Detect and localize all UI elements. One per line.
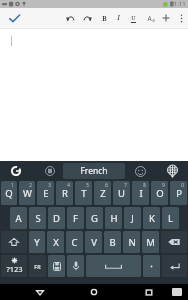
button[interactable]: S <box>29 207 46 229</box>
button[interactable]: Language <box>29 255 46 277</box>
staticText: T <box>81 187 87 200</box>
staticText: 2 <box>29 182 32 188</box>
staticText: 8 <box>143 182 146 188</box>
button[interactable]: Backspace <box>161 231 187 253</box>
button[interactable]: Recent apps <box>134 284 164 300</box>
button[interactable]: A <box>10 207 27 229</box>
button[interactable]: Stickers <box>48 255 65 277</box>
button[interactable]: Home <box>79 284 109 300</box>
button[interactable]: Back <box>25 284 55 300</box>
button[interactable]: P <box>170 181 187 205</box>
staticText: A <box>147 14 152 23</box>
button[interactable]: Y <box>29 231 45 253</box>
staticText: U <box>118 187 125 200</box>
staticText: ?123 <box>6 264 23 274</box>
staticText: Q <box>5 187 13 200</box>
staticText: E <box>43 187 49 200</box>
staticText: H <box>110 212 118 225</box>
button[interactable]: Shift <box>1 231 27 253</box>
button[interactable]: J <box>124 207 141 229</box>
button[interactable]: Undo <box>62 8 78 28</box>
button[interactable]: V <box>85 231 102 253</box>
staticText: 5 <box>86 182 89 188</box>
button[interactable]: L <box>162 207 179 229</box>
staticText: R <box>62 187 68 200</box>
button[interactable]: D <box>48 207 65 229</box>
button[interactable]: Underline <box>125 8 141 28</box>
staticText: W <box>23 187 32 200</box>
button[interactable]: N <box>123 231 140 253</box>
staticText: O <box>156 187 164 200</box>
staticText: a <box>152 17 155 23</box>
button[interactable]: Q <box>1 181 17 205</box>
button[interactable]: Text format <box>143 8 159 28</box>
staticText: 1 <box>11 182 14 188</box>
staticText: French <box>80 165 108 177</box>
button[interactable]: Period <box>143 255 160 277</box>
button[interactable]: R <box>56 181 73 205</box>
staticText: J <box>131 212 134 225</box>
button[interactable]: Done <box>5 8 23 28</box>
button[interactable]: I <box>132 181 149 205</box>
staticText: 9 <box>162 182 165 188</box>
button[interactable]: G <box>86 207 103 229</box>
button[interactable]: Space <box>86 255 141 277</box>
staticText: X <box>53 236 59 249</box>
staticText: 3 <box>48 182 51 188</box>
button[interactable]: C <box>66 231 83 253</box>
button[interactable]: F <box>67 207 84 229</box>
staticText: 7 <box>124 182 127 188</box>
staticText: G <box>91 212 98 225</box>
staticText: B <box>109 236 116 249</box>
button[interactable]: H <box>105 207 122 229</box>
button[interactable]: Clipboard <box>43 164 56 177</box>
staticText: A <box>15 212 22 225</box>
button[interactable]: O <box>151 181 168 205</box>
button[interactable]: More options <box>174 8 188 28</box>
staticText: I <box>117 13 120 23</box>
button[interactable]: K <box>143 207 160 229</box>
button[interactable]: Emoji <box>133 164 147 178</box>
button[interactable]: W <box>19 181 35 205</box>
button[interactable]: T <box>75 181 92 205</box>
staticText: M <box>146 236 155 249</box>
staticText: L <box>168 212 173 225</box>
staticText: D <box>53 212 60 225</box>
button[interactable]: Hide keyboard <box>172 288 182 296</box>
staticText: S <box>35 212 41 225</box>
staticText: F <box>73 212 78 225</box>
staticText: K <box>149 212 155 225</box>
staticText: U <box>131 14 136 22</box>
staticText: V <box>91 236 97 249</box>
button[interactable]: Redo <box>80 8 96 28</box>
button[interactable]: U <box>113 181 130 205</box>
staticText: I <box>139 187 143 200</box>
staticText: Y <box>34 236 40 249</box>
button[interactable]: Z <box>94 181 111 205</box>
button[interactable]: Italic <box>110 8 126 28</box>
staticText: C <box>71 236 78 249</box>
button[interactable]: Bold <box>96 8 112 28</box>
button[interactable]: Hide keyboard <box>165 164 179 178</box>
staticText: B <box>102 14 107 23</box>
button[interactable]: M <box>142 231 159 253</box>
staticText: FR <box>34 263 41 270</box>
button[interactable]: B <box>104 231 121 253</box>
button[interactable]: E <box>37 181 54 205</box>
staticText: N <box>128 236 136 249</box>
button[interactable]: Insert <box>158 8 174 28</box>
staticText: 4 <box>67 182 70 188</box>
button[interactable]: Google search <box>9 164 22 177</box>
staticText: P <box>176 187 182 200</box>
staticText: Z <box>100 187 106 200</box>
staticText: 11:11 <box>170 0 186 8</box>
button[interactable]: Symbols <box>1 255 27 277</box>
staticText: 6 <box>105 182 108 188</box>
button[interactable]: Enter <box>162 255 187 277</box>
staticText: 0 <box>181 182 184 188</box>
button[interactable]: Voice input <box>67 255 84 277</box>
button[interactable]: French <box>63 163 125 179</box>
button[interactable]: X <box>47 231 64 253</box>
